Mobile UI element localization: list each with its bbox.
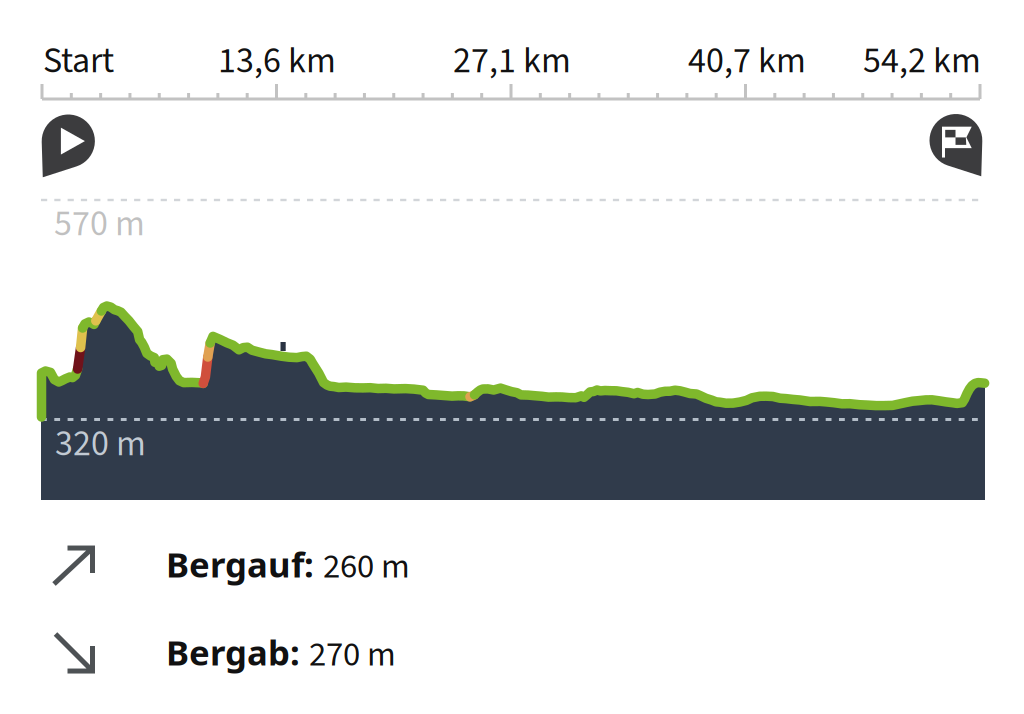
button[interactable]: Route finish (0, 0, 1024, 714)
button[interactable]: Route start (0, 0, 1024, 714)
staticText: 320 m (55, 418, 146, 470)
staticText: Bergauf: 260 m (166, 541, 410, 591)
staticText: 40,7 km (688, 35, 806, 87)
staticText: 54,2 km (863, 35, 981, 87)
staticText: 570 m (54, 198, 145, 250)
staticText: Bergab: 270 m (166, 629, 396, 679)
staticText: 27,1 km (453, 35, 571, 87)
staticText: Start (43, 35, 114, 87)
staticText: 13,6 km (218, 35, 336, 87)
